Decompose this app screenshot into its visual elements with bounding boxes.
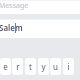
button[interactable]: Key r xyxy=(12,58,23,75)
button[interactable]: Key i xyxy=(63,58,74,75)
staticText: i xyxy=(67,61,70,72)
button[interactable]: Key t xyxy=(25,58,36,75)
staticText: t xyxy=(29,61,32,72)
staticText: y xyxy=(41,61,46,72)
button[interactable]: Key u xyxy=(50,58,61,75)
staticText: Message xyxy=(0,1,29,11)
button[interactable]: Salem xyxy=(0,19,80,38)
button[interactable]: Key y xyxy=(38,58,49,75)
button[interactable]: Message xyxy=(0,0,80,14)
staticText: Salem xyxy=(0,22,23,33)
staticText: r xyxy=(16,61,20,72)
button[interactable]: Key e xyxy=(0,58,11,75)
staticText: u xyxy=(53,61,58,72)
staticText: e xyxy=(3,61,8,72)
